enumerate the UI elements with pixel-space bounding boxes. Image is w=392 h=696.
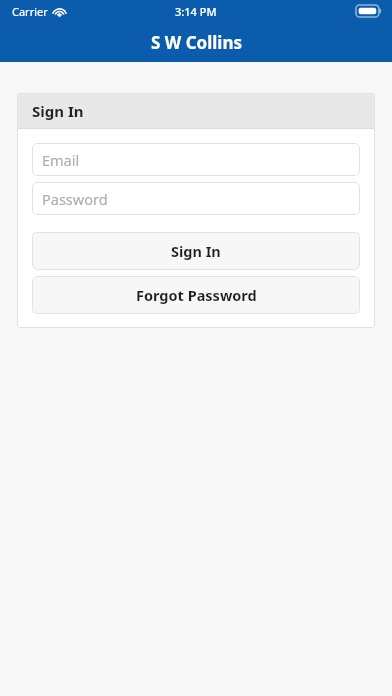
button[interactable]: Forgot Password	[32, 276, 360, 314]
button[interactable]: Sign In	[32, 232, 360, 270]
button[interactable]: Password	[32, 182, 360, 215]
staticText: Sign In	[32, 101, 84, 121]
staticText: Email	[42, 150, 80, 170]
staticText: Forgot Password	[136, 285, 257, 305]
staticText: 3:14 PM	[175, 4, 217, 19]
staticText: Carrier	[12, 4, 48, 19]
staticText: Sign In	[171, 241, 221, 261]
staticText: Password	[42, 189, 108, 209]
staticText: S W Collins	[151, 31, 242, 54]
button[interactable]: Email	[32, 143, 360, 176]
